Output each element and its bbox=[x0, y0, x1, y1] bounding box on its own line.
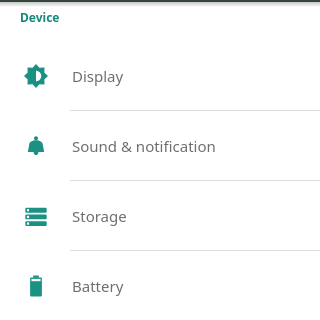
staticText: Battery bbox=[72, 276, 124, 296]
staticText: Device bbox=[20, 9, 60, 25]
staticText: Sound & notification bbox=[72, 136, 216, 156]
button[interactable]: Sound & notification bbox=[0, 111, 320, 180]
staticText: Storage bbox=[72, 206, 127, 226]
staticText: Display bbox=[72, 66, 124, 86]
button[interactable]: Display bbox=[0, 41, 320, 110]
button[interactable]: Battery bbox=[0, 251, 320, 320]
button[interactable]: Storage bbox=[0, 181, 320, 250]
